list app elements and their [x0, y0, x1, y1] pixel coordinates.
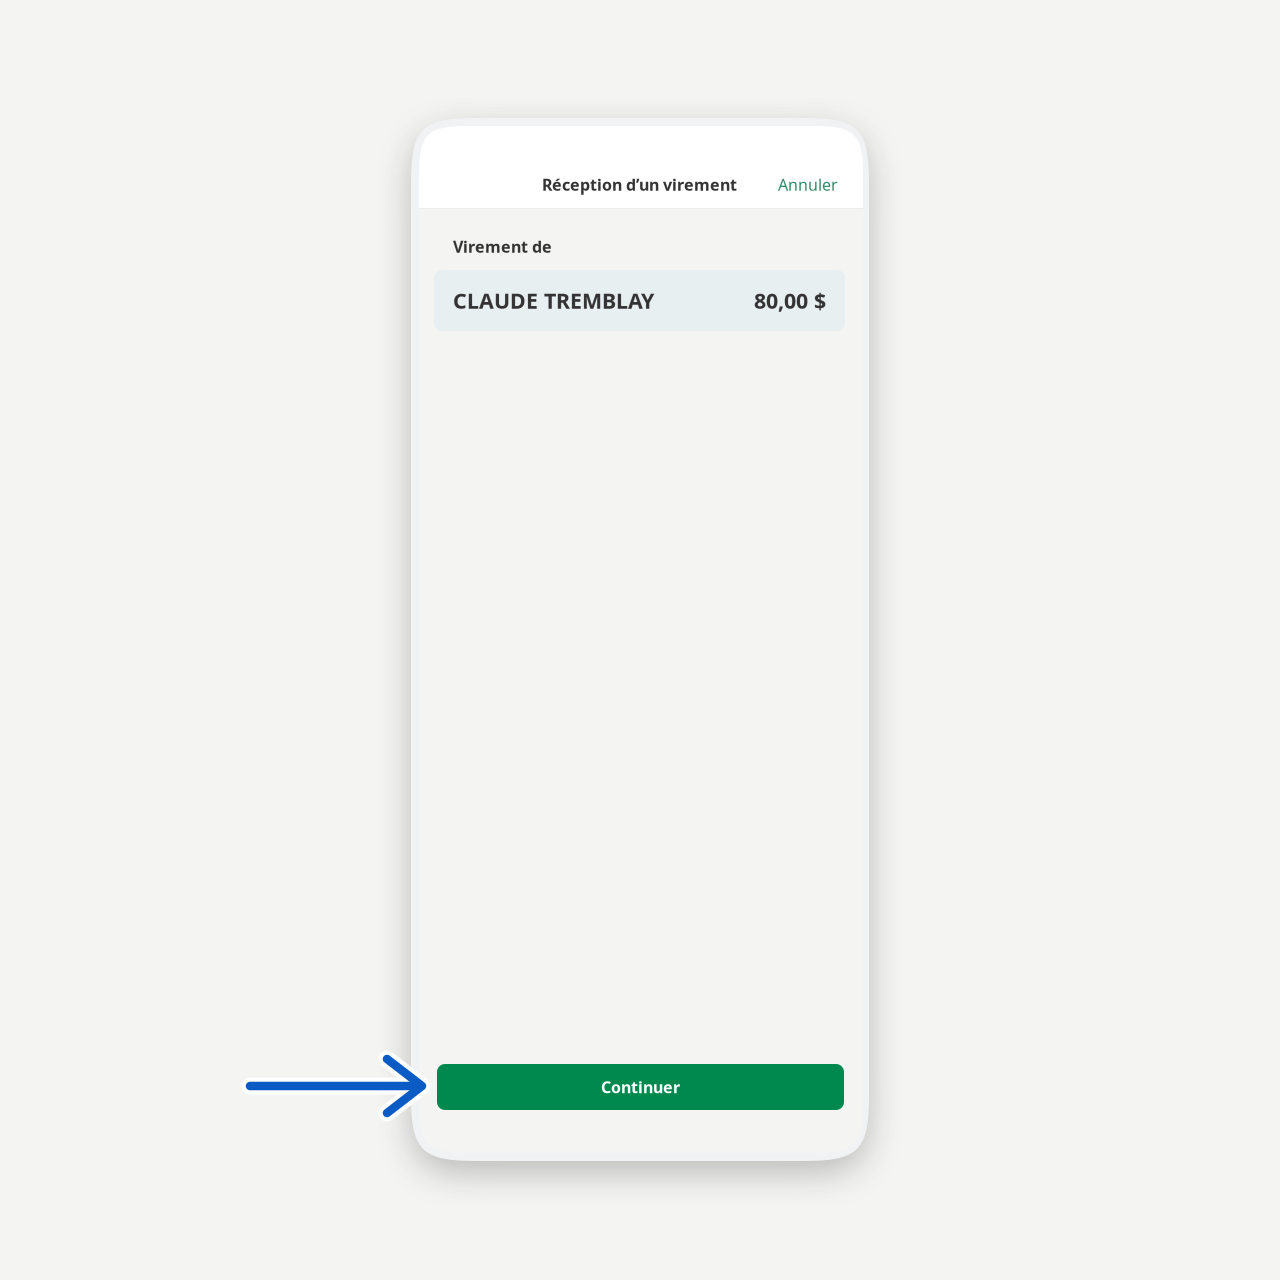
staticText: Annuler	[778, 174, 838, 195]
button[interactable]: Continuer	[437, 1064, 844, 1110]
button[interactable]: Annuler	[772, 168, 844, 201]
staticText: Continuer	[601, 1076, 680, 1098]
staticText: 80,00 $	[754, 286, 826, 315]
staticText: Réception d’un virement	[542, 174, 737, 195]
staticText: CLAUDE TREMBLAY	[453, 286, 654, 315]
staticText: Virement de	[453, 236, 552, 257]
